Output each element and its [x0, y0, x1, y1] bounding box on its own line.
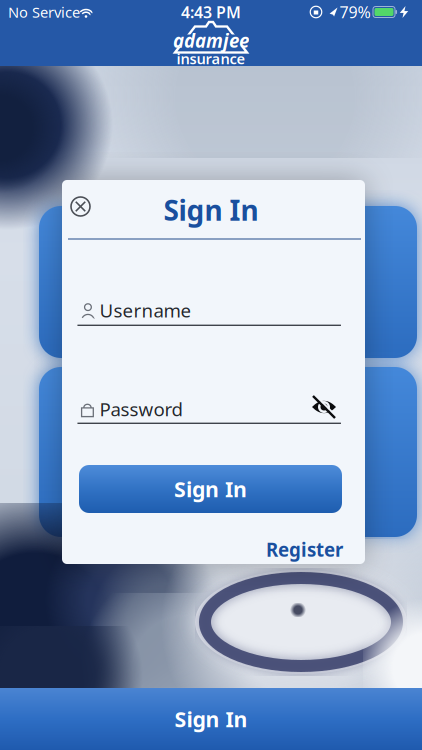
button[interactable]: Register — [223, 537, 343, 562]
button[interactable]: Username — [77, 300, 341, 326]
staticText: Sign In — [163, 191, 258, 229]
staticText: Register — [266, 537, 343, 562]
staticText: 4:43 PM — [181, 1, 241, 23]
staticText: Password — [99, 397, 182, 421]
button[interactable]: Password — [77, 399, 341, 425]
staticText: No Service — [8, 2, 80, 22]
staticText: Sign In — [174, 475, 247, 503]
button[interactable]: Sign In — [79, 465, 342, 513]
staticText: adamjee — [173, 28, 249, 53]
staticText: 79% — [339, 1, 370, 23]
button[interactable]: Show password — [311, 397, 337, 419]
staticText: Sign In — [174, 705, 247, 733]
button[interactable]: Close — [67, 193, 93, 219]
staticText: Username — [99, 298, 191, 323]
button[interactable]: Sign In — [0, 688, 422, 750]
staticText: insurance — [176, 49, 245, 68]
